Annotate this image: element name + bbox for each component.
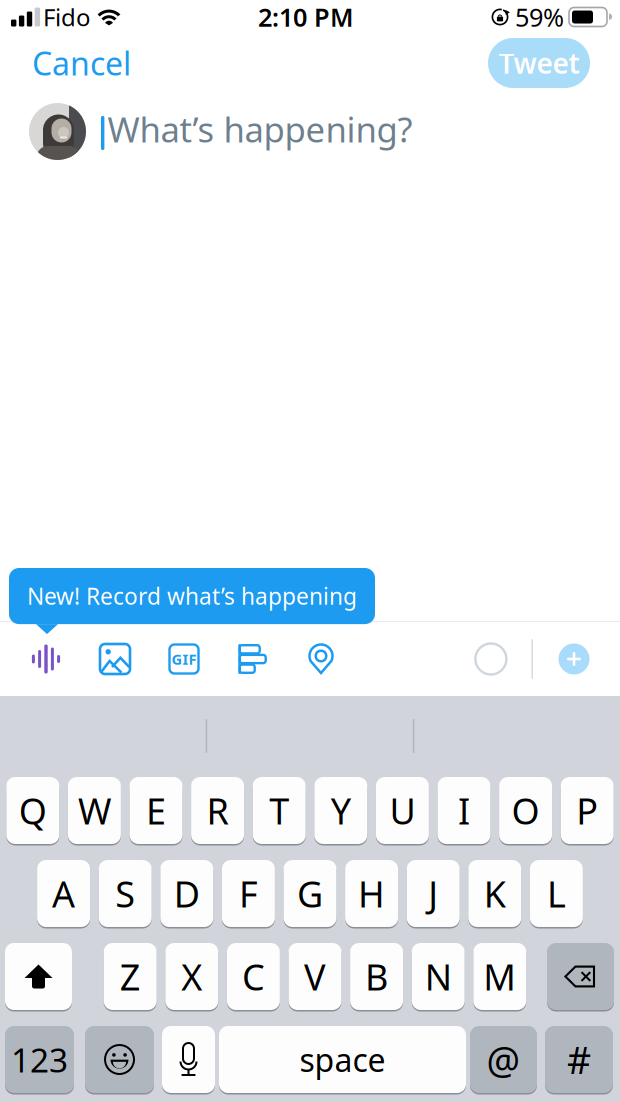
button[interactable]: Delete [547, 942, 614, 1011]
button[interactable]: Add poll [226, 633, 278, 685]
staticText: 2:10 PM [258, 0, 354, 34]
button[interactable]: G [283, 859, 336, 928]
button[interactable]: U [376, 776, 429, 845]
staticText: L [547, 870, 566, 917]
staticText: K [484, 870, 506, 917]
staticText: X [181, 953, 202, 1000]
staticText: J [428, 870, 438, 917]
staticText: What’s happening? [107, 106, 412, 152]
staticText: F [239, 870, 258, 917]
button[interactable]: W [68, 776, 121, 845]
staticText: A [52, 870, 75, 917]
staticText: Z [120, 953, 141, 1000]
button[interactable]: K [468, 859, 521, 928]
staticText: Fido [43, 1, 91, 33]
staticText: R [207, 787, 229, 834]
button[interactable]: P [561, 776, 614, 845]
staticText: Tweet [498, 44, 579, 82]
button[interactable]: D [160, 859, 213, 928]
button[interactable]: Add photo [89, 633, 141, 685]
staticText: I [458, 787, 470, 834]
button[interactable]: Add location [295, 633, 347, 685]
button[interactable]: Z [104, 942, 157, 1011]
button[interactable]: T [253, 776, 306, 845]
staticText: space [299, 1038, 385, 1081]
button[interactable]: Record audio [20, 633, 72, 685]
staticText: @ [486, 1035, 520, 1084]
staticText: Y [331, 787, 351, 834]
staticText: V [304, 953, 326, 1000]
button[interactable]: 123 [5, 1025, 74, 1094]
button[interactable]: X [165, 942, 218, 1011]
button[interactable]: F [222, 859, 275, 928]
staticText: # [567, 1035, 591, 1084]
button[interactable]: Y [314, 776, 367, 845]
staticText: D [174, 870, 200, 917]
button[interactable]: Dictation [162, 1025, 215, 1094]
button[interactable]: I [437, 776, 490, 845]
button[interactable]: @ [470, 1025, 537, 1094]
button[interactable]: Cancel [0, 32, 147, 94]
button[interactable]: M [473, 942, 526, 1011]
button[interactable]: O [499, 776, 552, 845]
button[interactable]: Add GIF [158, 633, 210, 685]
button[interactable]: Emoji [85, 1025, 154, 1094]
staticText: W [78, 787, 111, 834]
staticText: O [512, 787, 540, 834]
staticText: S [115, 870, 135, 917]
staticText: C [242, 953, 265, 1000]
button[interactable]: E [129, 776, 182, 845]
staticText: T [269, 787, 289, 834]
button[interactable]: B [350, 942, 403, 1011]
staticText: P [576, 787, 598, 834]
staticText: Cancel [32, 42, 131, 84]
button[interactable]: H [345, 859, 398, 928]
button[interactable]: L [530, 859, 583, 928]
button[interactable]: Tweet [488, 38, 590, 88]
button[interactable]: space [219, 1025, 466, 1094]
staticText: New! Record what’s happening [27, 581, 357, 611]
staticText: 59% [515, 0, 564, 34]
staticText: E [146, 787, 166, 834]
staticText: M [483, 953, 516, 1000]
staticText: U [389, 787, 415, 834]
staticText: G [297, 870, 323, 917]
staticText: 123 [11, 1037, 68, 1082]
button[interactable]: New! Record what’s happening [9, 568, 375, 634]
button[interactable]: S [99, 859, 152, 928]
button[interactable]: R [191, 776, 244, 845]
button[interactable]: # [545, 1025, 613, 1094]
staticText: N [425, 953, 452, 1000]
staticText: Q [19, 787, 47, 834]
button[interactable]: N [412, 942, 465, 1011]
button[interactable]: Shift [5, 942, 72, 1011]
staticText: GIF [171, 649, 196, 669]
button[interactable]: A [37, 859, 90, 928]
button[interactable]: C [227, 942, 280, 1011]
button[interactable]: J [407, 859, 460, 928]
button[interactable]: V [288, 942, 341, 1011]
button[interactable]: Q [6, 776, 59, 845]
button[interactable]: Add another tweet [557, 642, 591, 676]
staticText: H [358, 870, 385, 917]
staticText: B [365, 953, 388, 1000]
